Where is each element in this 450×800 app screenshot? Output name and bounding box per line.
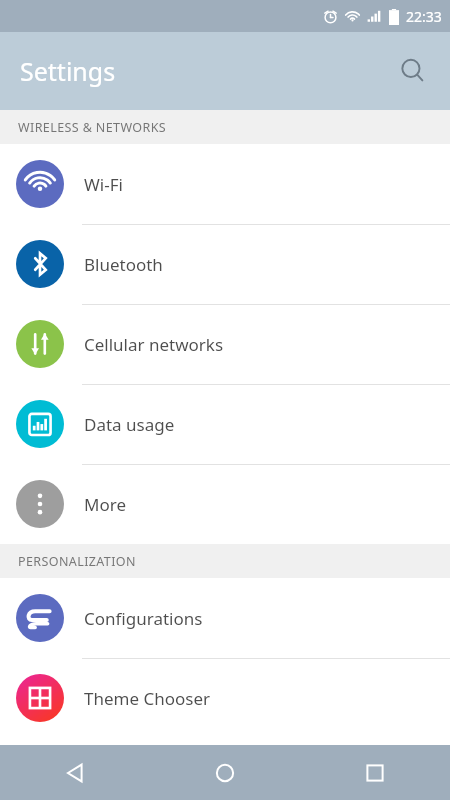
staticText: More: [84, 493, 126, 516]
button[interactable]: Theme Chooser: [0, 658, 450, 738]
staticText: Settings: [20, 54, 116, 88]
button[interactable]: Cellular networks: [0, 304, 450, 384]
staticText: Bluetooth: [84, 253, 163, 276]
staticText: 22:33: [406, 7, 442, 26]
button[interactable]: Bluetooth: [0, 224, 450, 304]
button[interactable]: Home: [150, 745, 300, 800]
staticText: Wi-Fi: [84, 173, 123, 196]
staticText: PERSONALIZATION: [18, 553, 136, 570]
button[interactable]: More: [0, 464, 450, 544]
button[interactable]: Recents: [300, 745, 450, 800]
button[interactable]: Data usage: [0, 384, 450, 464]
staticText: Configurations: [84, 607, 203, 630]
button[interactable]: Configurations: [0, 578, 450, 658]
staticText: Data usage: [84, 413, 175, 436]
button[interactable]: Wi-Fi: [0, 144, 450, 224]
button[interactable]: Search: [390, 48, 436, 94]
staticText: WIRELESS & NETWORKS: [18, 119, 167, 136]
button[interactable]: Back: [0, 745, 150, 800]
staticText: Cellular networks: [84, 333, 224, 356]
staticText: Theme Chooser: [84, 687, 211, 710]
